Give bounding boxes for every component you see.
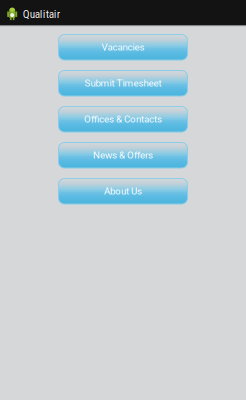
staticText: Offices & Contacts <box>84 113 162 125</box>
staticText: News & Offers <box>93 149 153 161</box>
button[interactable]: News & Offers <box>58 142 187 168</box>
button[interactable]: About Us <box>58 178 187 204</box>
staticText: Qualitair <box>23 8 60 21</box>
button[interactable]: Submit Timesheet <box>58 70 187 96</box>
staticText: Vacancies <box>101 41 144 53</box>
staticText: Submit Timesheet <box>84 77 161 89</box>
button[interactable]: Vacancies <box>58 34 187 60</box>
staticText: About Us <box>104 185 142 197</box>
button[interactable]: Offices & Contacts <box>58 106 187 132</box>
